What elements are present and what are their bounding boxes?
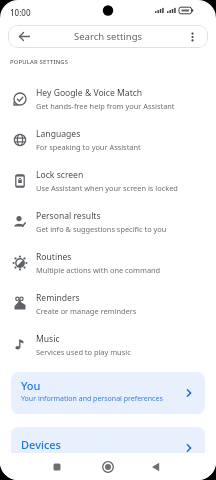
staticText: Devices: [21, 437, 61, 452]
staticText: Reminders: [36, 292, 80, 304]
staticText: Multiple actions with one command: [36, 265, 161, 275]
button[interactable]: Routines: [0, 242, 216, 283]
button[interactable]: [47, 457, 67, 477]
staticText: Your information and personal preference…: [21, 394, 163, 404]
button[interactable]: Hey Google & Voice Match: [0, 78, 216, 119]
staticText: Get hands-free help from your Assistant: [36, 101, 175, 111]
staticText: Create or manage reminders: [36, 306, 137, 316]
button[interactable]: Reminders: [0, 283, 216, 324]
staticText: For speaking to your Assistant: [36, 142, 141, 152]
button[interactable]: Lock screen: [0, 160, 216, 201]
button[interactable]: Search settings: [8, 25, 208, 48]
staticText: Lock screen: [36, 169, 84, 181]
button[interactable]: Music: [0, 324, 216, 365]
button[interactable]: You: [11, 372, 205, 414]
staticText: Routines: [36, 251, 72, 263]
button[interactable]: Devices: [11, 427, 205, 469]
staticText: Get info & suggestions specific to you: [36, 224, 167, 234]
staticText: Personal results: [36, 210, 101, 222]
button[interactable]: Languages: [0, 119, 216, 160]
staticText: Hey Google & Voice Match: [36, 87, 143, 99]
button[interactable]: Personal results: [0, 201, 216, 242]
button[interactable]: [98, 457, 118, 477]
staticText: POPULAR SETTINGS: [10, 58, 69, 66]
staticText: Music: [36, 333, 60, 345]
staticText: Languages: [36, 128, 81, 140]
staticText: You: [21, 378, 41, 393]
staticText: Services used to play music: [36, 347, 131, 357]
staticText: Search settings: [74, 30, 143, 43]
staticText: 10:00: [10, 7, 31, 18]
button[interactable]: [146, 457, 166, 477]
staticText: Use Assistant when your screen is locked: [36, 183, 178, 193]
